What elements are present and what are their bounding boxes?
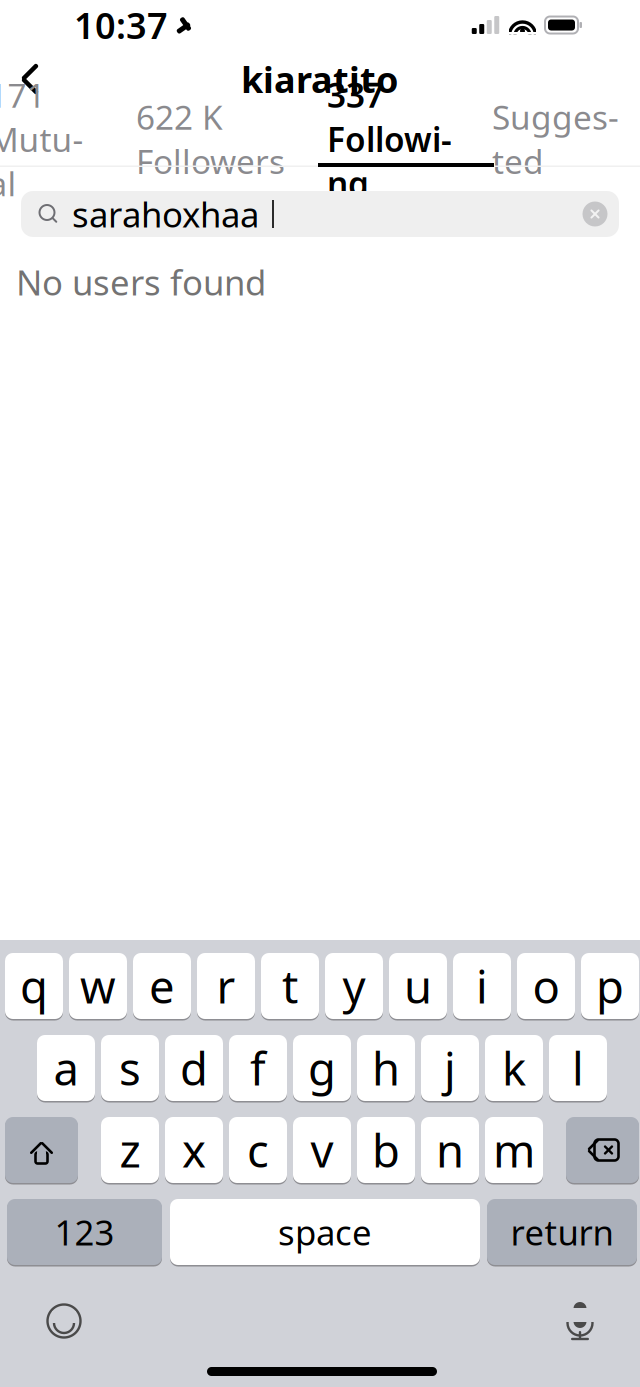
- staticText: g: [308, 1038, 336, 1098]
- button[interactable]: i: [453, 952, 511, 1020]
- staticText: u: [404, 956, 432, 1016]
- staticText: kiaratito: [241, 55, 399, 103]
- button[interactable]: e: [133, 952, 191, 1020]
- button[interactable]: o: [517, 952, 575, 1020]
- button[interactable]: Dictation: [550, 1293, 610, 1349]
- staticText: f: [250, 1038, 266, 1098]
- staticText: w: [80, 956, 116, 1016]
- staticText: o: [532, 956, 559, 1016]
- staticText: j: [444, 1038, 456, 1098]
- button[interactable]: g: [293, 1034, 351, 1102]
- staticText: Suggested: [492, 95, 619, 183]
- button[interactable]: h: [357, 1034, 415, 1102]
- staticText: r: [216, 956, 235, 1016]
- button[interactable]: 171 Mutual: [0, 111, 108, 167]
- button[interactable]: d: [165, 1034, 223, 1102]
- staticText: return: [510, 1209, 613, 1255]
- button[interactable]: f: [229, 1034, 287, 1102]
- staticText: x: [182, 1120, 206, 1180]
- button[interactable]: n: [421, 1116, 479, 1184]
- button[interactable]: b: [357, 1116, 415, 1184]
- button[interactable]: z: [101, 1116, 159, 1184]
- staticText: k: [502, 1038, 526, 1098]
- staticText: l: [572, 1038, 584, 1098]
- button[interactable]: l: [549, 1034, 607, 1102]
- button[interactable]: v: [293, 1116, 351, 1184]
- button[interactable]: a: [37, 1034, 95, 1102]
- button[interactable]: Suggested: [492, 111, 619, 167]
- button[interactable]: u: [389, 952, 447, 1020]
- staticText: 171 Mutual: [0, 73, 83, 205]
- button[interactable]: p: [581, 952, 639, 1020]
- button[interactable]: Shift: [5, 1116, 78, 1184]
- button[interactable]: Back: [8, 53, 52, 105]
- button[interactable]: t: [261, 952, 319, 1020]
- staticText: s: [119, 1038, 141, 1098]
- staticText: b: [372, 1120, 400, 1180]
- staticText: c: [247, 1120, 269, 1180]
- button[interactable]: j: [421, 1034, 479, 1102]
- button[interactable]: Clear text: [575, 191, 615, 237]
- staticText: n: [436, 1120, 464, 1180]
- button[interactable]: q: [5, 952, 63, 1020]
- staticText: i: [476, 956, 488, 1016]
- staticText: 10:37: [74, 1, 168, 49]
- button[interactable]: x: [165, 1116, 223, 1184]
- staticText: space: [278, 1209, 372, 1255]
- button[interactable]: m: [485, 1116, 543, 1184]
- staticText: p: [596, 956, 624, 1016]
- staticText: e: [149, 956, 175, 1016]
- button[interactable]: 123: [7, 1198, 162, 1266]
- staticText: 123: [54, 1209, 114, 1255]
- staticText: q: [20, 956, 48, 1016]
- staticText: t: [282, 956, 298, 1016]
- button[interactable]: space: [170, 1198, 480, 1266]
- button[interactable]: 337 Following: [327, 111, 452, 167]
- button[interactable]: y: [325, 952, 383, 1020]
- staticText: 337 Following: [327, 73, 452, 205]
- button[interactable]: c: [229, 1116, 287, 1184]
- staticText: a: [53, 1038, 78, 1098]
- button[interactable]: return: [487, 1198, 637, 1266]
- staticText: v: [310, 1120, 333, 1180]
- button[interactable]: w: [69, 952, 127, 1020]
- staticText: d: [180, 1038, 208, 1098]
- staticText: y: [342, 956, 365, 1016]
- button[interactable]: Delete: [566, 1116, 639, 1184]
- staticText: z: [119, 1120, 140, 1180]
- button[interactable]: r: [197, 952, 255, 1020]
- button[interactable]: 622 K Followers: [136, 111, 285, 167]
- button[interactable]: Emoji keyboard: [34, 1293, 94, 1349]
- staticText: No users found: [16, 259, 266, 305]
- staticText: m: [493, 1120, 535, 1180]
- staticText: sarahoxhaa: [72, 191, 259, 237]
- button[interactable]: s: [101, 1034, 159, 1102]
- staticText: h: [372, 1038, 400, 1098]
- button[interactable]: k: [485, 1034, 543, 1102]
- staticText: 622 K Followers: [136, 95, 285, 183]
